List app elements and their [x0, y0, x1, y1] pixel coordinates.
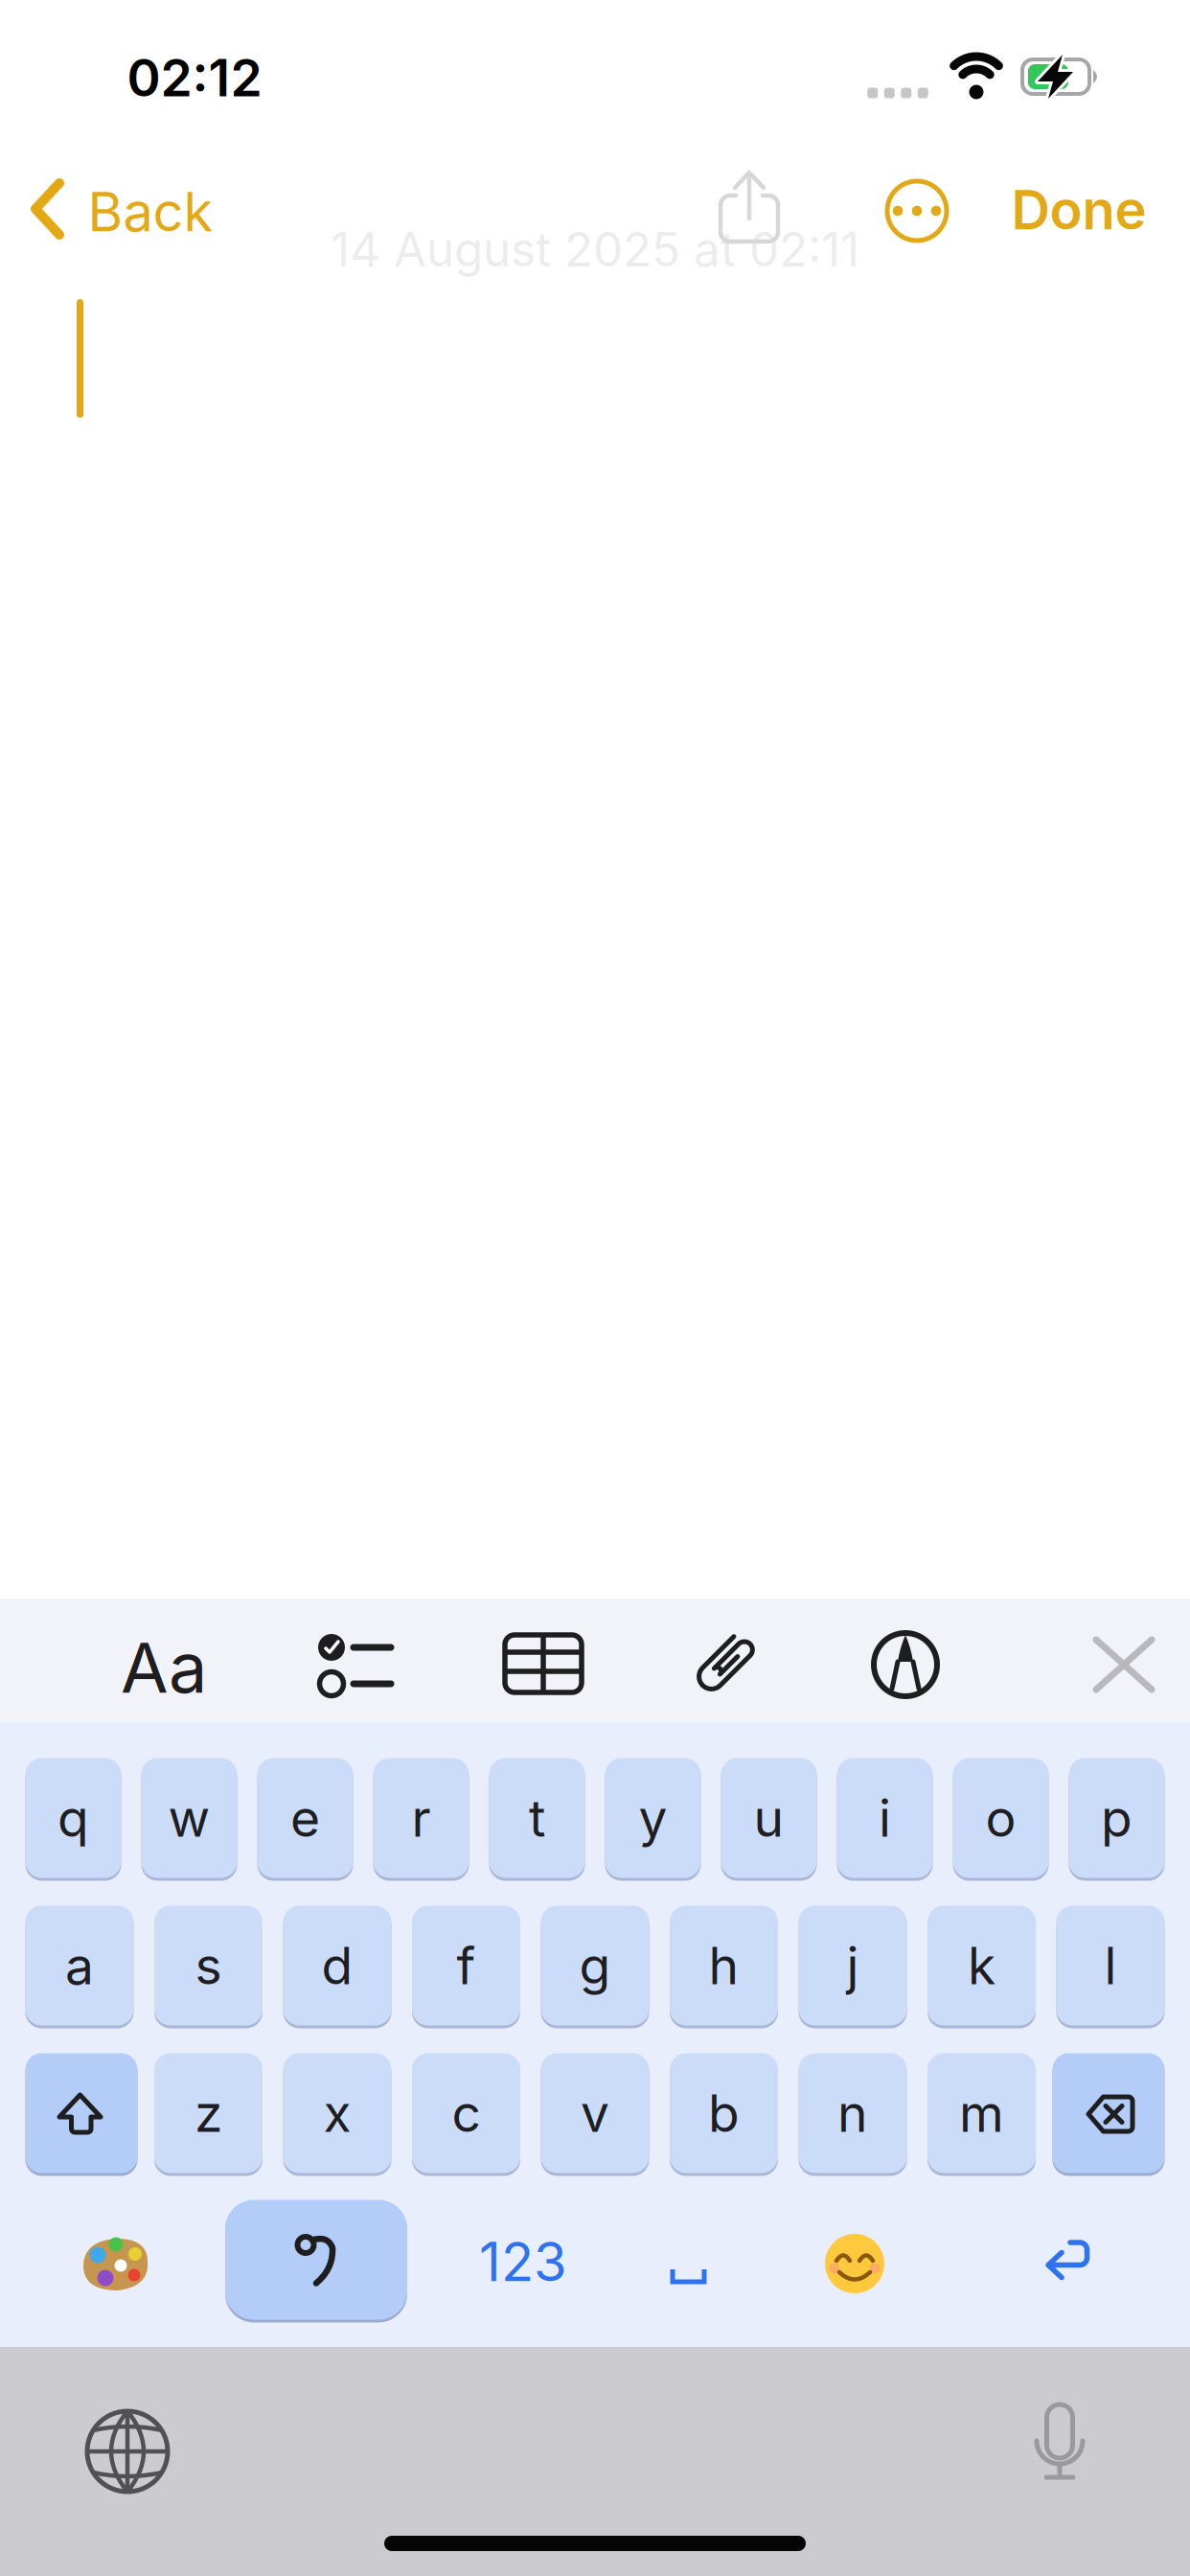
- button[interactable]: h: [670, 1906, 778, 2025]
- staticText: w: [168, 1787, 210, 1849]
- button[interactable]: q: [25, 1758, 121, 1878]
- button[interactable]: f: [412, 1906, 520, 2025]
- button[interactable]: [824, 2233, 885, 2294]
- staticText: z: [195, 2082, 222, 2144]
- button[interactable]: l: [1056, 1906, 1165, 2025]
- staticText: l: [1104, 1935, 1117, 1996]
- button[interactable]: p: [1069, 1758, 1165, 1878]
- button[interactable]: [655, 2228, 722, 2324]
- staticText: o: [985, 1787, 1016, 1849]
- staticText: a: [65, 1935, 94, 1996]
- button[interactable]: b: [670, 2053, 778, 2173]
- button[interactable]: [1053, 2053, 1165, 2173]
- staticText: b: [708, 2082, 740, 2144]
- staticText: c: [452, 2082, 481, 2144]
- button[interactable]: [25, 2053, 137, 2173]
- staticText: p: [1101, 1787, 1133, 1849]
- button[interactable]: j: [799, 1906, 907, 2025]
- staticText: v: [581, 2082, 609, 2144]
- button[interactable]: m: [927, 2053, 1036, 2173]
- staticText: s: [195, 1935, 222, 1996]
- button[interactable]: 123: [461, 2209, 585, 2314]
- staticText: Done: [1011, 177, 1146, 242]
- staticText: d: [321, 1935, 353, 1996]
- staticText: u: [754, 1787, 784, 1849]
- staticText: 14 August 2025 at 02:11: [331, 221, 859, 278]
- button[interactable]: a: [25, 1906, 134, 2025]
- staticText: j: [847, 1935, 859, 1996]
- button[interactable]: [701, 153, 797, 259]
- staticText: h: [709, 1935, 739, 1996]
- button[interactable]: [225, 2200, 407, 2320]
- button[interactable]: Back: [23, 156, 253, 262]
- button[interactable]: y: [605, 1758, 701, 1878]
- button[interactable]: [672, 1611, 777, 1716]
- staticText: m: [959, 2082, 1004, 2144]
- button[interactable]: [1071, 1612, 1177, 1717]
- staticText: g: [579, 1935, 611, 1996]
- button[interactable]: [1036, 2228, 1103, 2295]
- staticText: f: [457, 1935, 476, 1996]
- staticText: q: [57, 1787, 89, 1849]
- button[interactable]: [75, 2223, 155, 2304]
- button[interactable]: [302, 1613, 407, 1718]
- staticText: n: [837, 2082, 868, 2144]
- staticText: 02:12: [127, 47, 262, 108]
- button[interactable]: i: [837, 1758, 933, 1878]
- staticText: 123: [479, 2229, 567, 2294]
- button[interactable]: [1026, 2402, 1093, 2497]
- button[interactable]: w: [141, 1758, 237, 1878]
- staticText: Aa: [121, 1626, 207, 1709]
- staticText: e: [290, 1787, 320, 1849]
- button[interactable]: d: [283, 1906, 391, 2025]
- button[interactable]: k: [927, 1906, 1036, 2025]
- button[interactable]: [883, 177, 950, 244]
- button[interactable]: z: [154, 2053, 263, 2173]
- button[interactable]: [853, 1612, 958, 1717]
- button[interactable]: n: [799, 2053, 907, 2173]
- staticText: k: [968, 1935, 995, 1996]
- staticText: i: [879, 1787, 891, 1849]
- staticText: x: [323, 2082, 351, 2144]
- button[interactable]: e: [257, 1758, 353, 1878]
- button[interactable]: t: [489, 1758, 585, 1878]
- staticText: Back: [88, 179, 213, 244]
- staticText: r: [412, 1787, 431, 1849]
- button[interactable]: g: [541, 1906, 649, 2025]
- button[interactable]: v: [541, 2053, 649, 2173]
- button[interactable]: o: [953, 1758, 1049, 1878]
- button[interactable]: r: [373, 1758, 469, 1878]
- staticText: y: [639, 1787, 667, 1849]
- button[interactable]: Done: [1011, 177, 1146, 242]
- button[interactable]: c: [412, 2053, 520, 2173]
- button[interactable]: [81, 2405, 173, 2497]
- staticText: t: [529, 1787, 545, 1849]
- button[interactable]: x: [283, 2053, 391, 2173]
- button[interactable]: u: [721, 1758, 817, 1878]
- button[interactable]: [491, 1611, 596, 1716]
- button[interactable]: s: [154, 1906, 263, 2025]
- button[interactable]: Aa: [102, 1615, 226, 1720]
